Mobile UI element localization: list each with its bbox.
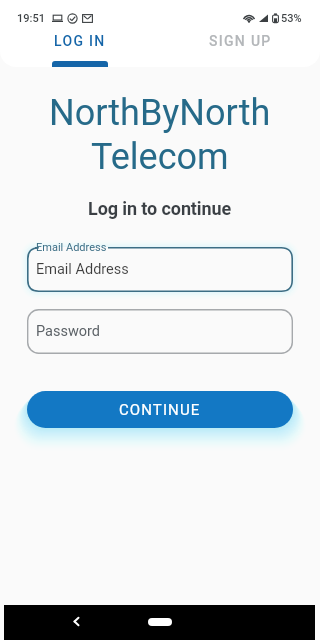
staticText: Password bbox=[36, 323, 101, 340]
button[interactable]: LOG IN bbox=[0, 27, 160, 67]
staticText: Log in to continue bbox=[88, 198, 232, 219]
button[interactable]: SIGN UP bbox=[160, 27, 320, 67]
staticText: Email Address bbox=[36, 241, 107, 254]
button[interactable]: Password bbox=[27, 309, 293, 354]
staticText: 53% bbox=[281, 12, 302, 25]
button[interactable]: Email Address bbox=[27, 247, 293, 292]
staticText: 19:51 bbox=[17, 12, 45, 25]
button[interactable]: Home bbox=[148, 618, 172, 626]
staticText: CONTINUE bbox=[119, 401, 201, 419]
button[interactable]: Back bbox=[61, 608, 91, 638]
staticText: NorthByNorth bbox=[49, 92, 271, 134]
button[interactable]: CONTINUE bbox=[27, 391, 293, 428]
staticText: Email Address bbox=[36, 261, 129, 278]
staticText: SIGN UP bbox=[209, 33, 272, 49]
staticText: Telecom bbox=[91, 136, 229, 178]
staticText: LOG IN bbox=[54, 33, 106, 49]
